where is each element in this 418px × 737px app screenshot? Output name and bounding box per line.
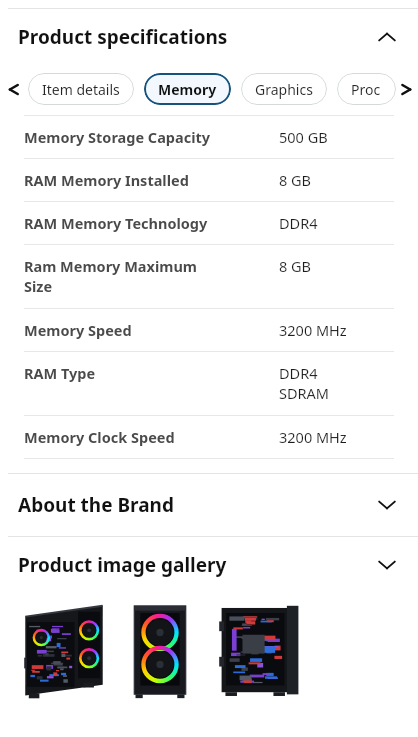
staticText: Memory Speed [24, 320, 279, 340]
button[interactable]: Memory [144, 73, 231, 105]
staticText: RAM Memory Technology [24, 213, 279, 233]
other: Collapse Product specifications [374, 24, 400, 50]
staticText: About the Brand [18, 492, 374, 518]
button[interactable]: Product image gallery [0, 537, 418, 593]
staticText: 3200 MHz [279, 427, 347, 447]
staticText: DDR4 [279, 213, 318, 233]
staticText: DDR4 SDRAM [279, 363, 329, 404]
staticText: Ram Memory Maximum Size [24, 256, 279, 297]
button[interactable]: Scroll left [0, 69, 26, 109]
button[interactable]: Product specifications [0, 9, 418, 65]
button[interactable]: Item [0, 73, 18, 105]
staticText: Product specifications [18, 24, 374, 50]
staticText: 8 GB [279, 170, 312, 190]
button[interactable]: Processor [337, 73, 396, 105]
other: Expand Product image gallery [374, 552, 400, 578]
staticText: Memory Storage Capacity [24, 127, 279, 147]
button[interactable]: Graphics [241, 73, 327, 105]
staticText: Memory [158, 80, 217, 99]
staticText: Graphics [255, 80, 313, 99]
button[interactable]: About the Brand [0, 474, 418, 536]
staticText: Item details [42, 80, 120, 99]
staticText: Product image gallery [18, 552, 374, 578]
staticText: RAM Type [24, 363, 279, 383]
staticText: Processor [351, 80, 382, 99]
other: Expand About the Brand [374, 492, 400, 518]
staticText: RAM Memory Installed [24, 170, 279, 190]
button[interactable]: Product image 2 [124, 595, 196, 703]
staticText: Memory Clock Speed [24, 427, 279, 447]
staticText: 500 GB [279, 127, 328, 147]
button[interactable]: Scroll right [396, 69, 418, 109]
button[interactable]: Item details [28, 73, 134, 105]
button[interactable]: Product image 1 [20, 595, 108, 703]
button[interactable]: Product image 3 [212, 595, 308, 703]
staticText: 3200 MHz [279, 320, 347, 340]
staticText: 8 GB [279, 256, 312, 276]
